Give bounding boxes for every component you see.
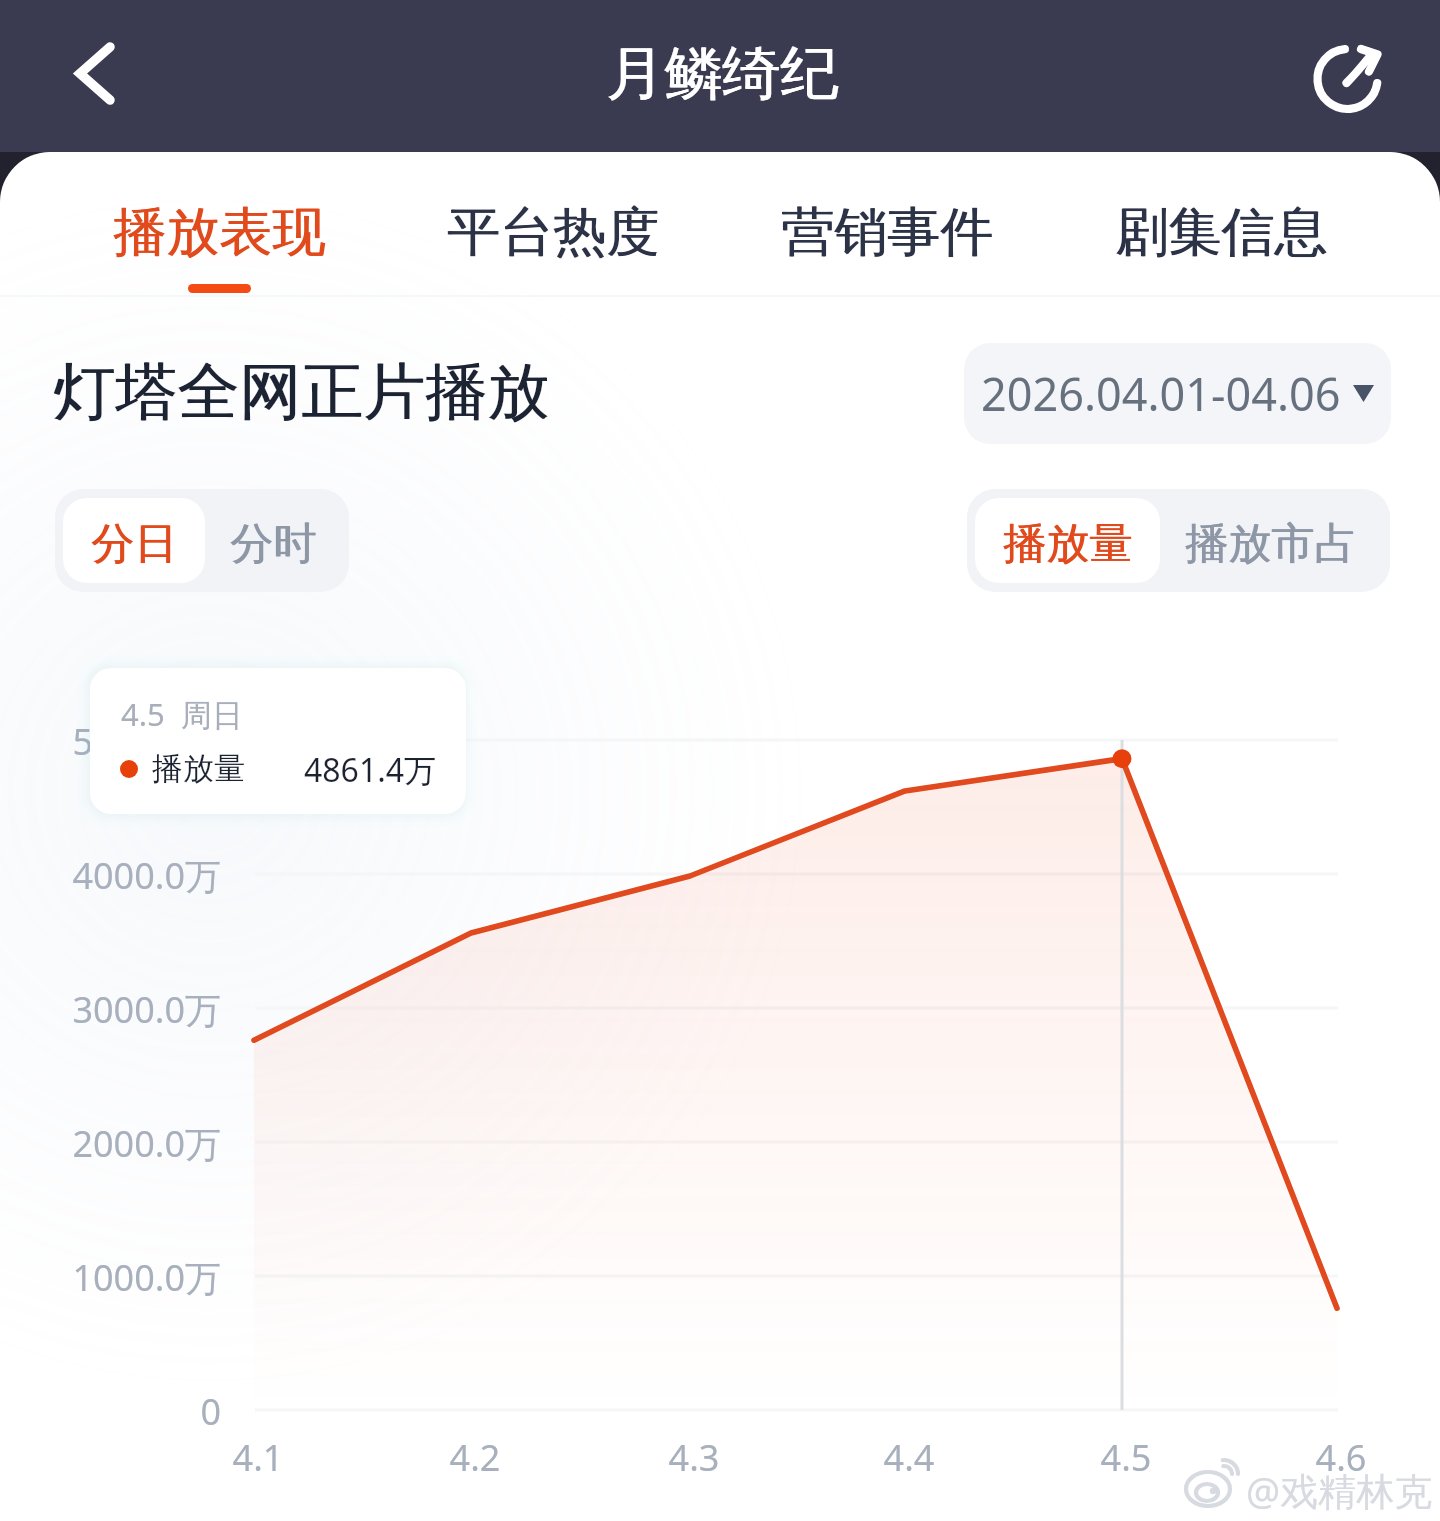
button[interactable]: 剧集信息 bbox=[1054, 152, 1388, 295]
staticText: 播放市占 bbox=[1185, 517, 1357, 571]
staticText: 剧集信息 bbox=[1115, 199, 1327, 266]
staticText: 2000.0万 bbox=[0, 1119, 221, 1168]
staticText: 播放表现 bbox=[113, 199, 325, 266]
staticText: 4000.0万 bbox=[0, 851, 221, 900]
staticText: 4.6 bbox=[1281, 1433, 1401, 1482]
staticText: 4.5 bbox=[1066, 1433, 1186, 1482]
staticText: 剧集信息 bbox=[1116, 199, 1328, 266]
staticText: 灯塔全网正片播放 bbox=[54, 353, 550, 431]
staticText: 平台热度 bbox=[448, 199, 660, 266]
staticText: 4861.4万 bbox=[304, 748, 437, 792]
staticText: 4.5 周日 bbox=[121, 693, 243, 735]
staticText: 分日 bbox=[91, 517, 177, 571]
staticText: 3000.0万 bbox=[0, 985, 221, 1034]
staticText: 月鳞绮纪 bbox=[607, 37, 839, 110]
button[interactable]: 播放量 bbox=[975, 498, 1160, 583]
staticText: 灯塔全网正片播放 bbox=[53, 353, 549, 431]
staticText: 4.4 bbox=[849, 1433, 969, 1482]
button[interactable]: 营销事件 bbox=[720, 152, 1054, 295]
button[interactable]: Share bbox=[1287, 19, 1407, 139]
staticText: 4.1 bbox=[198, 1433, 318, 1482]
staticText: 0 bbox=[0, 1387, 221, 1436]
staticText: 分日 bbox=[92, 517, 178, 571]
button[interactable]: 平台热度 bbox=[386, 152, 720, 295]
button[interactable]: Back bbox=[35, 16, 155, 136]
button[interactable]: 分日 bbox=[63, 498, 205, 583]
staticText: 平台热度 bbox=[447, 199, 659, 266]
staticText: 分时 bbox=[230, 517, 316, 571]
staticText: 播放量 bbox=[1003, 517, 1132, 571]
button[interactable]: 分时 bbox=[205, 489, 349, 592]
staticText: 月鳞绮纪 bbox=[606, 37, 838, 110]
staticText: 营销事件 bbox=[782, 199, 994, 266]
staticText: 播放表现 bbox=[114, 199, 326, 266]
staticText: 播放量 bbox=[1004, 517, 1133, 571]
staticText: 5000.0万 bbox=[0, 717, 221, 766]
staticText: 分时 bbox=[231, 517, 317, 571]
staticText: 4.2 bbox=[415, 1433, 535, 1482]
staticText: 营销事件 bbox=[781, 199, 993, 266]
button[interactable]: 播放表现 bbox=[52, 152, 386, 295]
staticText: 播放市占 bbox=[1186, 517, 1358, 571]
staticText: 1000.0万 bbox=[0, 1253, 221, 1302]
staticText: 播放量 bbox=[152, 749, 245, 788]
button[interactable]: 2026.04.01-04.06 bbox=[964, 343, 1391, 444]
button[interactable]: 播放市占 bbox=[1160, 489, 1390, 592]
staticText: 4.3 bbox=[634, 1433, 754, 1482]
staticText: @戏精林克 bbox=[1246, 1464, 1433, 1516]
staticText: 2026.04.01-04.06 bbox=[981, 363, 1341, 424]
